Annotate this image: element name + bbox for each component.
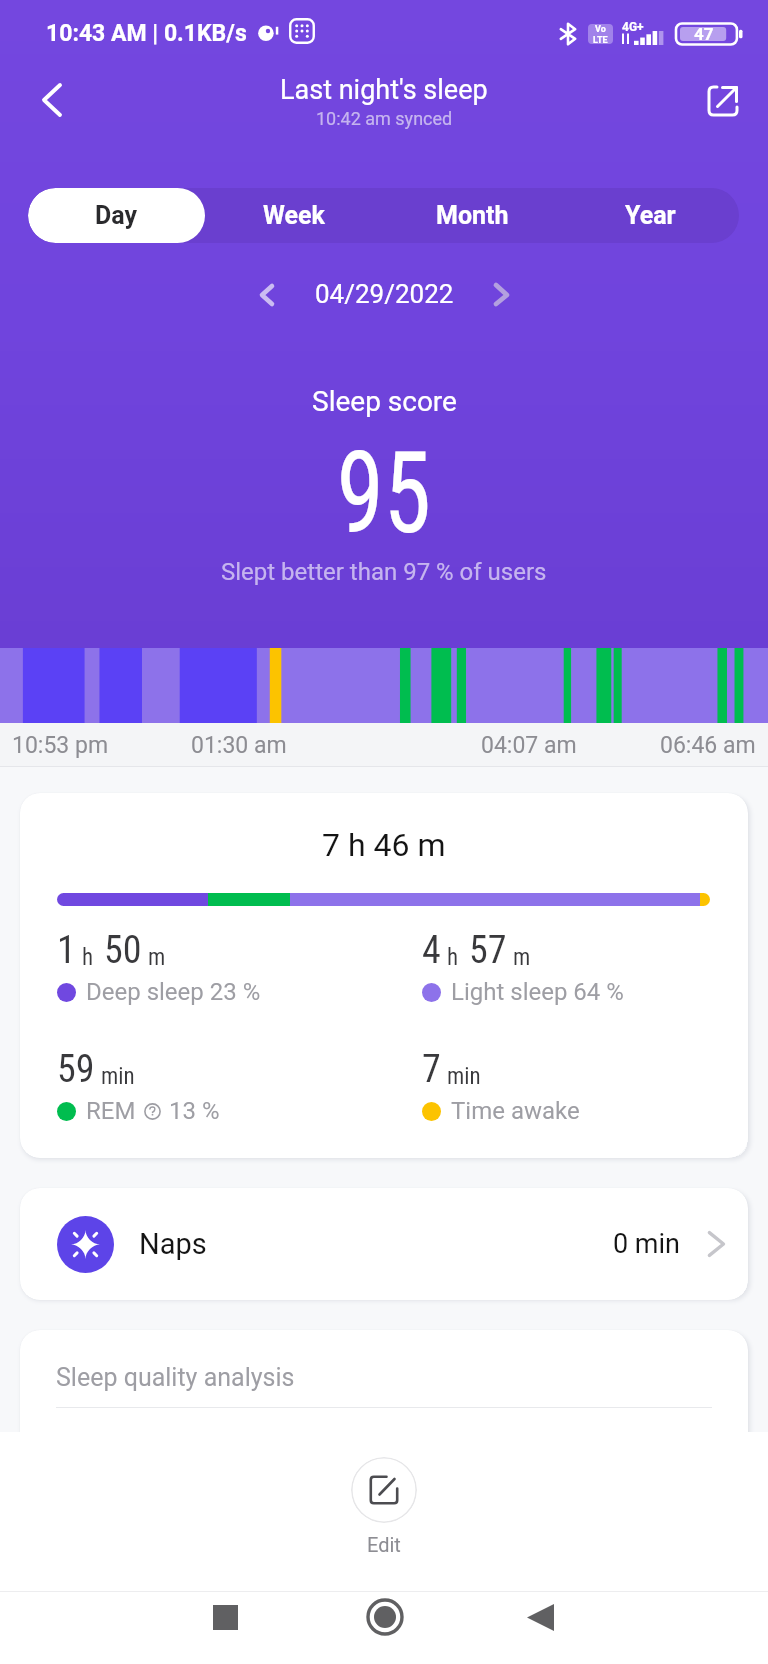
button[interactable] xyxy=(351,1457,417,1523)
staticText: REM xyxy=(86,1097,136,1125)
button[interactable]: Home xyxy=(359,1592,411,1644)
button[interactable]: Day xyxy=(28,188,205,243)
staticText: 4G+ xyxy=(622,20,644,34)
staticText: Year xyxy=(625,201,676,230)
staticText: h xyxy=(447,944,459,971)
button[interactable]: Week xyxy=(205,188,383,243)
button[interactable]: Back xyxy=(24,66,80,122)
button[interactable]: Month xyxy=(383,188,561,243)
staticText: Vo xyxy=(595,24,606,35)
staticText: h xyxy=(82,944,94,971)
button[interactable]: Naps xyxy=(20,1188,748,1300)
staticText: 04:07 am xyxy=(481,732,577,759)
staticText: 0 min xyxy=(613,1228,681,1260)
staticText: Edit xyxy=(367,1533,401,1556)
staticText: 4 xyxy=(422,928,441,973)
staticText: 13 % xyxy=(169,1097,220,1125)
staticText: Time awake xyxy=(451,1097,580,1125)
staticText: 57 xyxy=(469,928,507,973)
button[interactable]: Year xyxy=(561,188,739,243)
button[interactable]: Recent apps xyxy=(200,1592,252,1644)
staticText: 04/29/2022 xyxy=(315,279,454,309)
staticText: Light sleep 64 % xyxy=(451,978,624,1006)
staticText: Sleep quality analysis xyxy=(56,1363,295,1392)
staticText: Last night's sleep xyxy=(280,74,488,106)
staticText: 10:42 am synced xyxy=(316,108,453,129)
staticText: 95 xyxy=(336,427,432,559)
staticText: Month xyxy=(436,201,509,230)
staticText: 50 xyxy=(104,928,142,973)
staticText: 10:43 AM | 0.1KB/s xyxy=(46,20,247,47)
staticText: 7 xyxy=(422,1047,441,1092)
staticText: 7 h 46 m xyxy=(322,826,446,864)
button[interactable]: Share xyxy=(695,81,751,137)
button[interactable]: Next day xyxy=(476,270,526,320)
staticText: Naps xyxy=(139,1227,207,1261)
button[interactable]: Previous day xyxy=(242,270,292,320)
staticText: m xyxy=(513,944,531,971)
staticText: Deep sleep 23 % xyxy=(86,978,261,1006)
staticText: 06:46 am xyxy=(660,732,756,759)
staticText: Slept better than 97 % of users xyxy=(221,558,547,586)
staticText: 47 xyxy=(694,24,714,44)
staticText: LTE xyxy=(593,35,608,44)
staticText: Day xyxy=(95,201,138,230)
staticText: Week xyxy=(263,201,325,230)
staticText: 01:30 am xyxy=(191,732,287,759)
staticText: min xyxy=(101,1063,135,1090)
button[interactable]: Back xyxy=(515,1592,567,1644)
staticText: 1 xyxy=(57,928,76,973)
staticText: 10:53 pm xyxy=(12,732,109,759)
staticText: Sleep score xyxy=(312,385,457,418)
staticText: m xyxy=(148,944,166,971)
staticText: min xyxy=(447,1063,481,1090)
staticText: 59 xyxy=(57,1047,95,1092)
